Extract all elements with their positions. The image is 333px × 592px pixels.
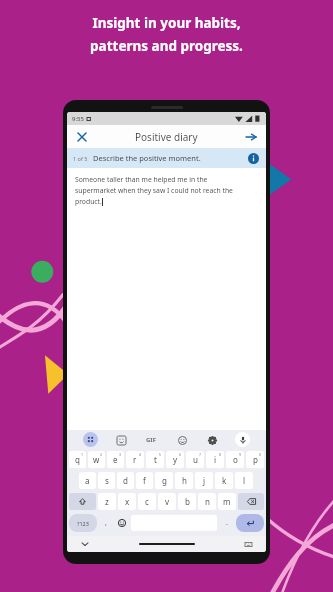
staticText: i	[214, 454, 217, 465]
button[interactable]: z	[98, 493, 116, 510]
button[interactable]: 8	[206, 451, 224, 468]
staticText: Insight in your habits,	[92, 14, 241, 32]
button[interactable]: 0	[246, 451, 264, 468]
button[interactable]: ?123	[69, 514, 97, 532]
staticText: u	[193, 454, 198, 465]
staticText: Someone taller than me helped me in the	[75, 175, 208, 184]
staticText: 0	[259, 452, 262, 457]
staticText: 4	[139, 452, 142, 457]
button[interactable]: n	[198, 493, 216, 510]
staticText: .	[226, 518, 228, 528]
button[interactable]: h	[175, 472, 193, 489]
staticText: ,	[105, 518, 107, 528]
button[interactable]: 3	[107, 451, 124, 468]
staticText: k	[222, 475, 227, 486]
staticText: l	[243, 475, 246, 486]
staticText: 7	[199, 452, 202, 457]
button[interactable]: Keyboard switcher	[83, 432, 98, 447]
button[interactable]: j	[195, 472, 213, 489]
button[interactable]: g	[155, 472, 173, 489]
button[interactable]: Someone taller than me helped me in the	[75, 175, 258, 430]
staticText: q	[75, 454, 80, 465]
button[interactable]: Emoji	[175, 433, 189, 447]
button[interactable]: v	[158, 493, 176, 510]
staticText: b	[185, 496, 190, 507]
staticText: s	[105, 475, 109, 486]
staticText: supermarket when they saw I could not re…	[75, 186, 233, 195]
button[interactable]: 4	[126, 451, 144, 468]
button[interactable]: Close	[74, 129, 90, 145]
staticText: 2	[100, 452, 103, 457]
staticText: n	[205, 496, 210, 507]
staticText: 3	[119, 452, 122, 457]
button[interactable]: a	[79, 472, 96, 489]
button[interactable]: c	[138, 493, 156, 510]
button[interactable]: Information	[247, 152, 260, 165]
staticText: j	[203, 475, 206, 486]
staticText: GIF	[146, 436, 156, 444]
staticText: 5	[159, 452, 162, 457]
button[interactable]: Keyboard	[242, 538, 254, 550]
staticText: r	[133, 454, 137, 465]
staticText: d	[123, 475, 128, 486]
staticText: p	[253, 454, 258, 465]
button[interactable]: Stickers	[114, 433, 128, 447]
button[interactable]: f	[136, 472, 153, 489]
button[interactable]: 9	[226, 451, 244, 468]
staticText: Describe the positive moment.	[93, 153, 201, 163]
staticText: ?123	[77, 520, 89, 527]
button[interactable]: 1 of 5	[73, 148, 260, 168]
button[interactable]: GIF	[144, 434, 158, 446]
staticText: f	[143, 475, 146, 486]
staticText: y	[173, 454, 178, 465]
staticText: Positive diary	[135, 130, 198, 144]
staticText: patterns and progress.	[90, 37, 243, 55]
button[interactable]: b	[178, 493, 196, 510]
staticText: m	[223, 496, 231, 507]
button[interactable]: l	[235, 472, 253, 489]
staticText: 8	[219, 452, 222, 457]
button[interactable]: k	[215, 472, 233, 489]
staticText: v	[165, 496, 170, 507]
staticText: w	[93, 454, 100, 465]
staticText: o	[233, 454, 238, 465]
button[interactable]: x	[118, 493, 136, 510]
button[interactable]: Home	[139, 543, 195, 545]
button[interactable]: Period	[219, 512, 234, 534]
button[interactable]: Hide keyboard	[79, 538, 91, 550]
button[interactable]: Backspace	[238, 493, 264, 510]
staticText: c	[145, 496, 149, 507]
button[interactable]: Settings	[205, 433, 219, 447]
button[interactable]: 6	[166, 451, 184, 468]
button[interactable]: Comma	[99, 512, 112, 534]
staticText: 9	[239, 452, 242, 457]
staticText: 9:55	[72, 115, 84, 123]
staticText: t	[154, 454, 157, 465]
staticText: 1	[81, 452, 84, 457]
button[interactable]: 1	[69, 451, 86, 468]
staticText: e	[113, 454, 118, 465]
staticText: g	[162, 475, 167, 486]
staticText: h	[182, 475, 187, 486]
staticText: z	[105, 496, 109, 507]
staticText: a	[85, 475, 90, 486]
button[interactable]: 5	[146, 451, 164, 468]
staticText: product.	[75, 197, 102, 206]
button[interactable]: d	[117, 472, 134, 489]
staticText: x	[125, 496, 130, 507]
button[interactable]: m	[218, 493, 236, 510]
button[interactable]: Voice input	[235, 432, 250, 447]
button[interactable]: s	[98, 472, 115, 489]
button[interactable]: Shift	[69, 493, 96, 510]
button[interactable]: 7	[186, 451, 204, 468]
button[interactable]: Emoji key	[114, 512, 129, 534]
button[interactable]: Next	[243, 129, 259, 145]
staticText: 6	[179, 452, 182, 457]
button[interactable]: 2	[88, 451, 105, 468]
button[interactable]: Enter	[236, 514, 264, 532]
staticText: 1 of 5	[73, 155, 88, 162]
